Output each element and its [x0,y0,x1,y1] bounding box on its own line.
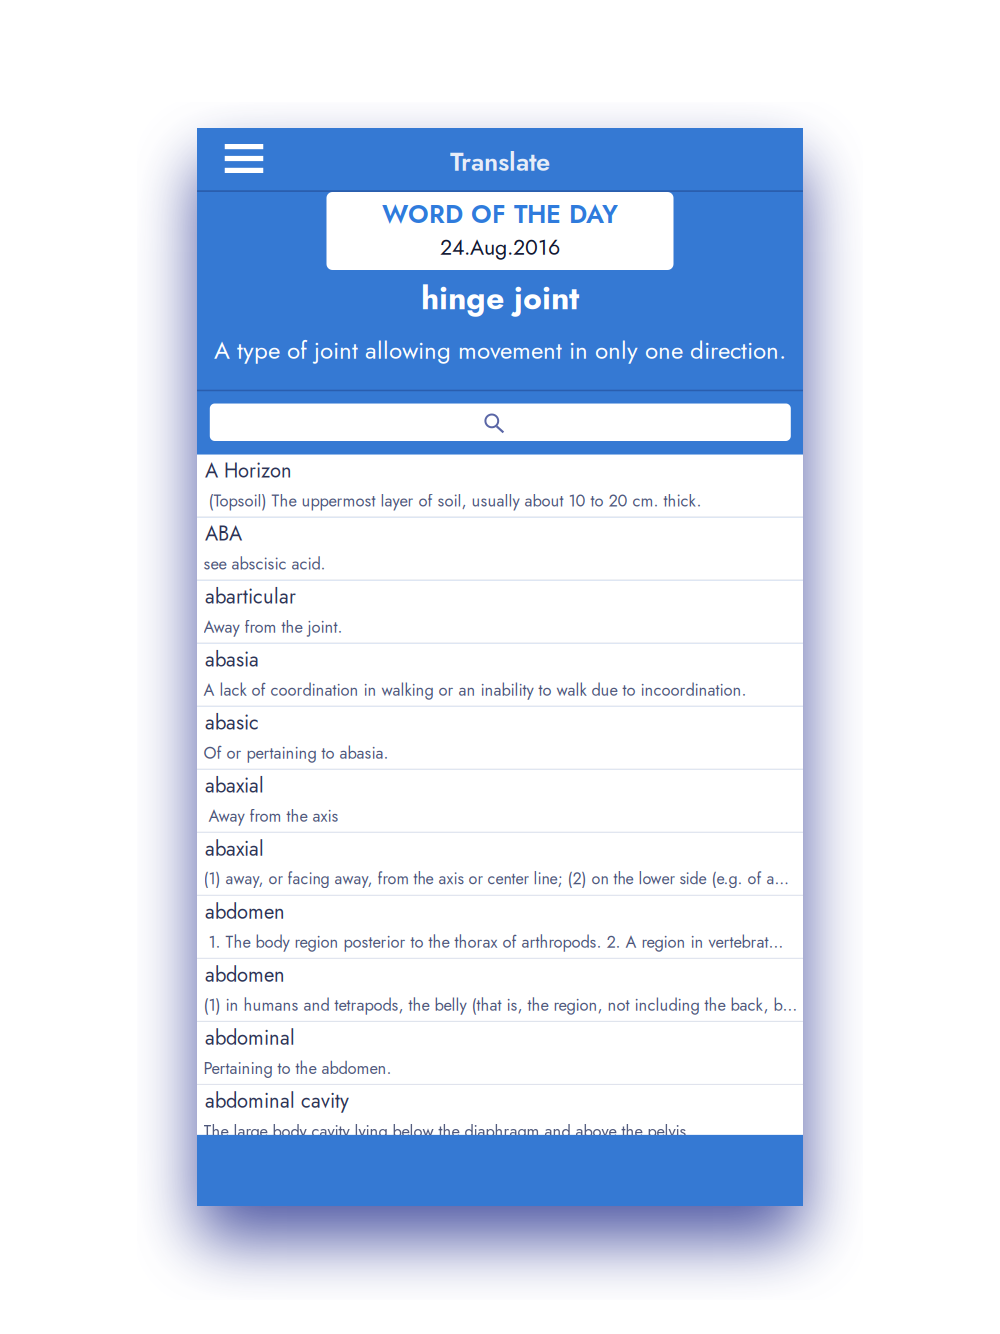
staticText: (1) away, or facing away, from the axis … [203,867,788,890]
staticText: 24.Aug.2016 [440,232,560,263]
staticText: Translate [450,144,550,180]
button[interactable]: abaxial [197,770,803,833]
button[interactable]: abdomen [197,896,803,959]
staticText: abdomen [205,897,285,926]
staticText: abasic [205,708,259,737]
button[interactable]: Menu [201,128,287,192]
button[interactable]: Search [210,403,791,440]
staticText: (Topsoil) The uppermost layer of soil, u… [203,489,701,513]
button[interactable]: abdominal [197,1022,803,1085]
staticText: (1) in humans and tetrapods, the belly (… [203,993,797,1017]
staticText: Pertaining to the abdomen. [203,1056,391,1080]
button[interactable]: A Horizon [197,454,803,517]
staticText: ABA [205,519,242,548]
staticText: The large body cavity lying below the di… [203,1119,691,1143]
staticText: WORD OF THE DAY [382,196,618,233]
staticText: abdominal cavity [205,1086,349,1115]
staticText: hinge joint [421,275,579,321]
button[interactable]: abasia [197,644,803,707]
staticText: see abscisic acid. [203,552,325,576]
staticText: Away from the axis [203,804,338,828]
staticText: abaxial [205,771,264,800]
button[interactable]: ABA [197,517,803,580]
staticText: Of or pertaining to abasia. [203,741,388,765]
staticText: abasia [205,645,259,674]
staticText: Away from the joint. [203,615,342,639]
button[interactable]: abdominal cavity [197,1085,803,1148]
staticText: abarticular [205,582,296,611]
staticText: A Horizon [205,456,292,485]
staticText: A type of joint allowing movement in onl… [214,333,786,368]
staticText: 1. The body region posterior to the thor… [203,930,783,954]
button[interactable]: abasic [197,707,803,770]
staticText: abdomen [205,960,285,989]
staticText: abaxial [205,834,264,863]
button[interactable]: abarticular [197,581,803,644]
button[interactable]: abaxial [197,833,803,896]
button[interactable]: abdomen [197,959,803,1022]
staticText: A lack of coordination in walking or an … [203,678,746,702]
staticText: abdominal [205,1023,295,1052]
